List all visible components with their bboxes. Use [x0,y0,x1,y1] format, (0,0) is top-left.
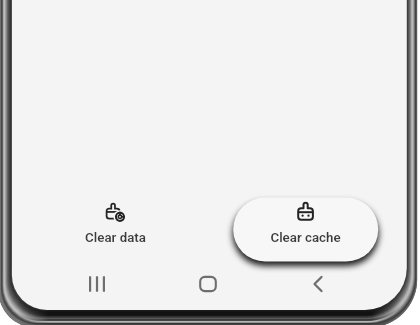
button[interactable]: Back [291,263,345,305]
button[interactable]: Home [181,263,235,305]
button[interactable]: Clear data [41,198,189,262]
staticText: Clear cache [270,230,341,246]
button[interactable]: Clear cache [233,198,378,262]
staticText: Clear data [85,230,146,246]
button[interactable]: Recents [70,263,124,305]
